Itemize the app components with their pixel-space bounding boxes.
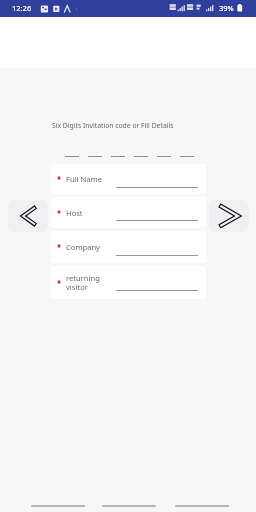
staticText: 39% <box>219 3 234 13</box>
staticText: Host <box>66 208 83 218</box>
staticText: Full Name <box>66 174 102 184</box>
button[interactable]: Company <box>51 231 206 263</box>
staticText: Company <box>66 242 100 252</box>
staticText: Six Digits Invitation code or Fill Detai… <box>52 121 174 130</box>
button[interactable]: Previous <box>8 200 48 232</box>
button[interactable]: returning visitor <box>51 266 206 299</box>
button[interactable]: Host <box>51 197 206 228</box>
button[interactable]: Full Name <box>51 164 206 194</box>
staticText: returning visitor <box>66 273 100 293</box>
button[interactable]: Back <box>31 505 85 507</box>
button[interactable]: Next <box>209 200 249 232</box>
button[interactable]: Home <box>102 505 156 507</box>
button[interactable]: Recents <box>175 505 229 507</box>
staticText: 12:26 <box>12 3 32 13</box>
